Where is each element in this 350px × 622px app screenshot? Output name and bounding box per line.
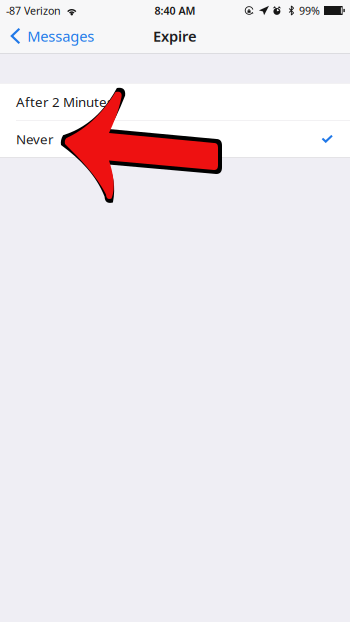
button[interactable]: Messages bbox=[0, 21, 102, 54]
staticText: After 2 Minutes bbox=[16, 93, 113, 111]
button[interactable]: After 2 Minutes bbox=[0, 83, 350, 120]
staticText: -87 Verizon bbox=[6, 3, 61, 18]
staticText: 99% bbox=[299, 3, 320, 18]
staticText: 8:40 AM bbox=[154, 3, 195, 18]
staticText: Messages bbox=[27, 26, 94, 46]
button[interactable]: Never bbox=[0, 120, 350, 157]
staticText: Never bbox=[16, 130, 54, 148]
staticText: Expire bbox=[153, 26, 197, 46]
